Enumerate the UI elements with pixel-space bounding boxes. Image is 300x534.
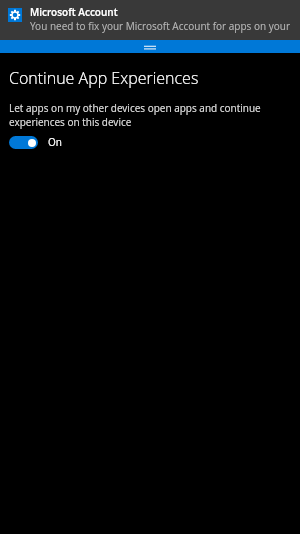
staticText: On [48, 135, 62, 149]
staticText: Microsoft Account [30, 5, 118, 19]
button[interactable]: Continue app experiences toggle, On [9, 135, 62, 149]
staticText: Let apps on my other devices open apps a… [9, 101, 261, 129]
staticText: You need to fix your Microsoft Account f… [30, 19, 291, 33]
button[interactable]: Microsoft Account [0, 0, 300, 40]
button[interactable]: Expand notification [0, 40, 300, 53]
staticText: Continue App Experiences [9, 67, 199, 89]
